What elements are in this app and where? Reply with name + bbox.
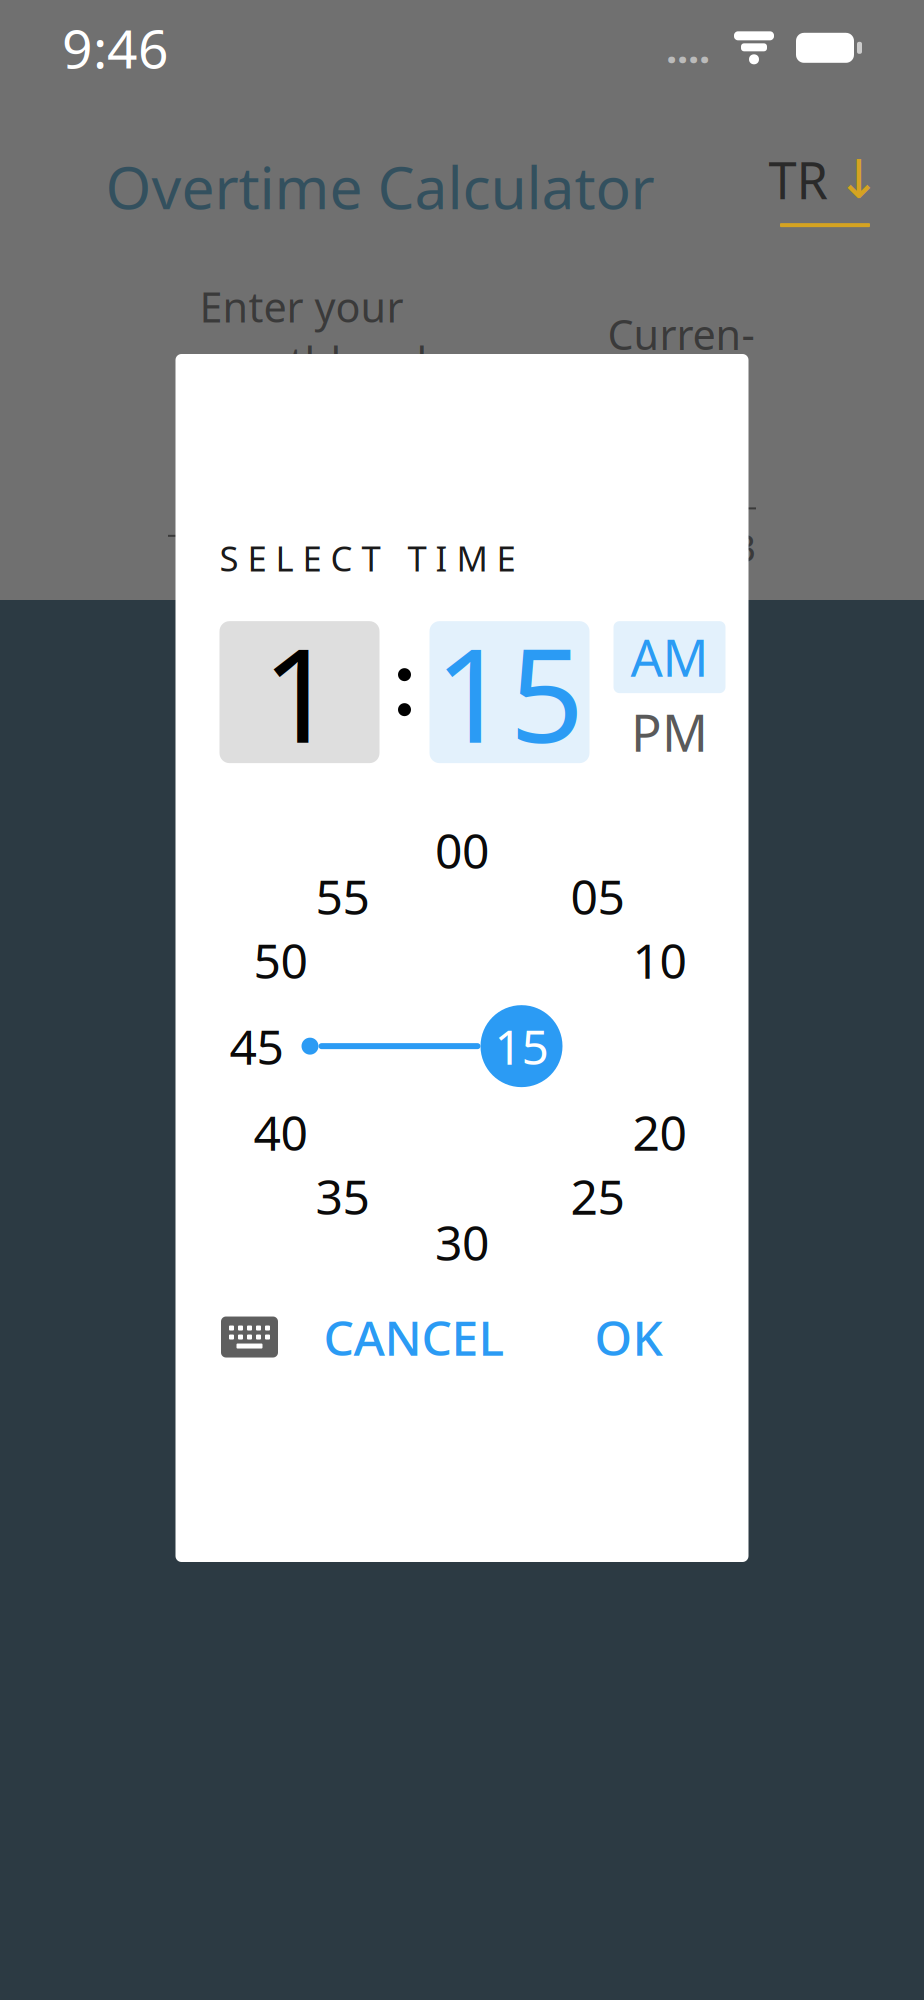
staticText: 55	[315, 864, 369, 928]
button[interactable]: CANCEL	[305, 1295, 522, 1379]
staticText: TR	[768, 146, 828, 213]
staticText: S E L E C T T I M E	[219, 535, 515, 581]
staticText: PM	[631, 698, 708, 766]
button[interactable]: Keyboard input	[219, 1310, 279, 1364]
staticText: 50	[253, 928, 307, 992]
staticText: OK	[594, 1305, 662, 1369]
staticText: CANCEL	[323, 1305, 504, 1369]
staticText: 45	[229, 1014, 283, 1078]
staticText: 1	[262, 605, 337, 779]
button[interactable]: AM	[613, 621, 725, 693]
staticText: 10	[632, 928, 686, 992]
staticText: 40	[253, 1100, 307, 1164]
staticText: 35	[315, 1164, 369, 1228]
staticText: 05	[570, 864, 624, 928]
staticText: Currency	[607, 307, 754, 416]
staticText: AM	[630, 623, 708, 691]
button[interactable]: OK	[576, 1295, 680, 1379]
button[interactable]: 15	[429, 621, 589, 763]
staticText: 15	[494, 1014, 548, 1078]
button[interactable]: 1	[219, 621, 379, 763]
staticText: ↓	[836, 149, 881, 210]
staticText: 4/5	[462, 549, 520, 600]
staticText: 20	[632, 1100, 686, 1164]
button[interactable]: PM	[613, 701, 725, 763]
staticText: 25	[570, 1164, 624, 1228]
staticText: 15	[434, 605, 584, 779]
staticText: 9:46	[62, 12, 169, 83]
staticText: Enter your monthly salary here	[199, 279, 488, 444]
staticText: Overtime Calculator	[105, 147, 654, 225]
staticText: 30	[435, 1210, 489, 1274]
staticText: 3/3	[698, 521, 756, 573]
staticText: 00	[435, 818, 489, 882]
staticText: ....	[666, 21, 710, 74]
button[interactable]: TR	[768, 146, 881, 227]
